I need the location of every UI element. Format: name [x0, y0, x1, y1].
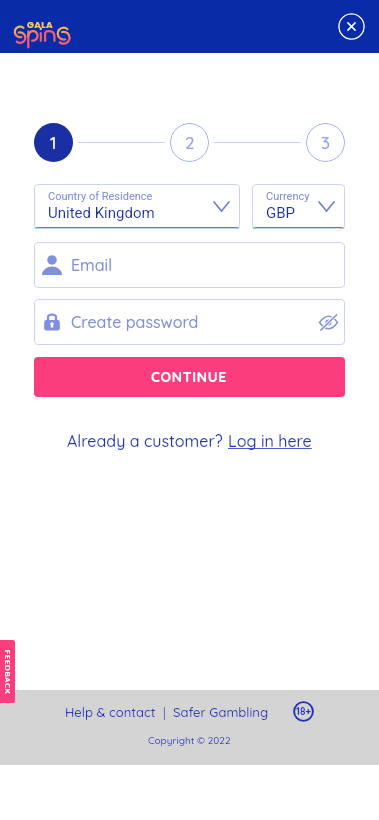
button[interactable]: Close [338, 13, 365, 40]
staticText: 3 [321, 132, 330, 153]
staticText: | [156, 704, 173, 720]
button[interactable]: Safer Gambling [173, 704, 269, 720]
button[interactable]: FEEDBACK [0, 640, 15, 703]
button[interactable]: Log in here [228, 431, 312, 451]
staticText: FEEDBACK [2, 640, 12, 703]
button[interactable]: 3 [306, 123, 345, 162]
staticText: GALA [27, 19, 54, 32]
button[interactable]: CONTINUE [34, 357, 345, 397]
staticText: Currency [266, 190, 310, 203]
staticText: Email [71, 255, 113, 275]
staticText: 18+ [296, 705, 312, 718]
staticText: United Kingdom [48, 204, 155, 222]
staticText: Create password [71, 312, 199, 332]
staticText: 1 [50, 132, 57, 153]
button[interactable]: 1 [34, 123, 73, 162]
button[interactable]: Help & contact [65, 704, 156, 720]
staticText: 2 [185, 132, 195, 153]
button[interactable]: 2 [170, 123, 209, 162]
staticText: CONTINUE [151, 368, 228, 386]
other: 18 plus [293, 701, 314, 722]
button[interactable]: Email [34, 242, 345, 288]
staticText: Country of Residence [48, 190, 153, 203]
button[interactable]: Create password [34, 299, 345, 345]
staticText: GBP [266, 204, 296, 222]
button[interactable]: Show password [319, 313, 338, 332]
staticText: Copyright © 2022 [148, 734, 231, 747]
staticText: Already a customer? [67, 431, 228, 451]
button[interactable]: Currency [252, 184, 345, 229]
button[interactable]: Country of Residence [34, 184, 240, 229]
